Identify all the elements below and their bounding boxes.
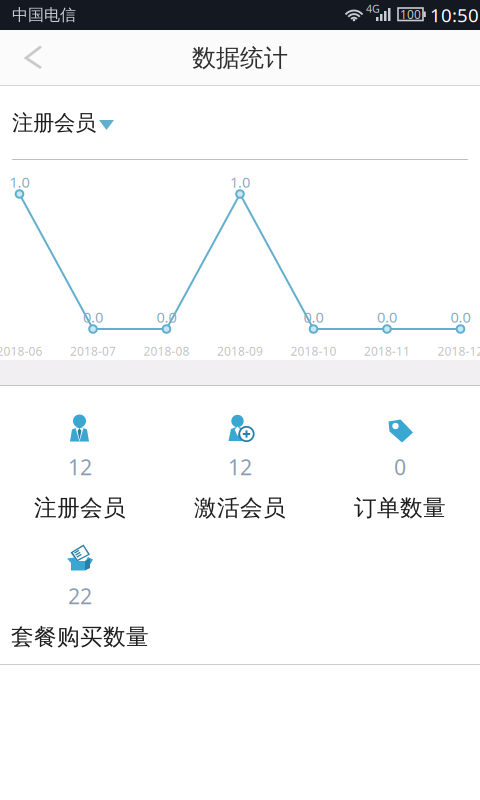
staticText: 0.0 <box>303 307 323 327</box>
staticText: 数据统计 <box>192 43 288 73</box>
button[interactable]: 12 <box>160 414 320 543</box>
staticText: 2018-12 <box>437 343 480 359</box>
button[interactable]: Back <box>0 30 66 86</box>
button[interactable]: 22 <box>0 543 160 672</box>
staticText: 100 <box>400 6 421 22</box>
staticText: 12 <box>68 453 92 481</box>
staticText: 2018-09 <box>217 343 263 359</box>
staticText: 注册会员 <box>12 110 96 136</box>
staticText: 10:50 <box>430 3 479 27</box>
staticText: 0.0 <box>83 307 103 327</box>
staticText: 0.0 <box>377 307 397 327</box>
staticText: 2018-10 <box>290 343 336 359</box>
staticText: 套餐购买数量 <box>11 623 149 651</box>
staticText: 0.0 <box>156 307 176 327</box>
staticText: 激活会员 <box>194 494 286 522</box>
staticText: 0.0 <box>450 307 470 327</box>
staticText: 订单数量 <box>354 494 446 522</box>
staticText: 1.0 <box>230 172 250 192</box>
staticText: 22 <box>68 582 92 610</box>
staticText: 中国电信 <box>12 5 76 25</box>
button[interactable]: 12 <box>0 414 160 543</box>
staticText: 4G <box>366 1 380 16</box>
staticText: 注册会员 <box>34 494 126 522</box>
button[interactable]: 0 <box>320 414 480 543</box>
staticText: 0 <box>394 453 406 481</box>
staticText: 2018-11 <box>364 343 410 359</box>
staticText: 2018-07 <box>70 343 116 359</box>
button[interactable]: 注册会员 <box>0 86 480 160</box>
staticText: 2018-08 <box>143 343 189 359</box>
staticText: 2018-06 <box>0 343 42 359</box>
staticText: 12 <box>228 453 252 481</box>
staticText: 1.0 <box>9 172 29 192</box>
